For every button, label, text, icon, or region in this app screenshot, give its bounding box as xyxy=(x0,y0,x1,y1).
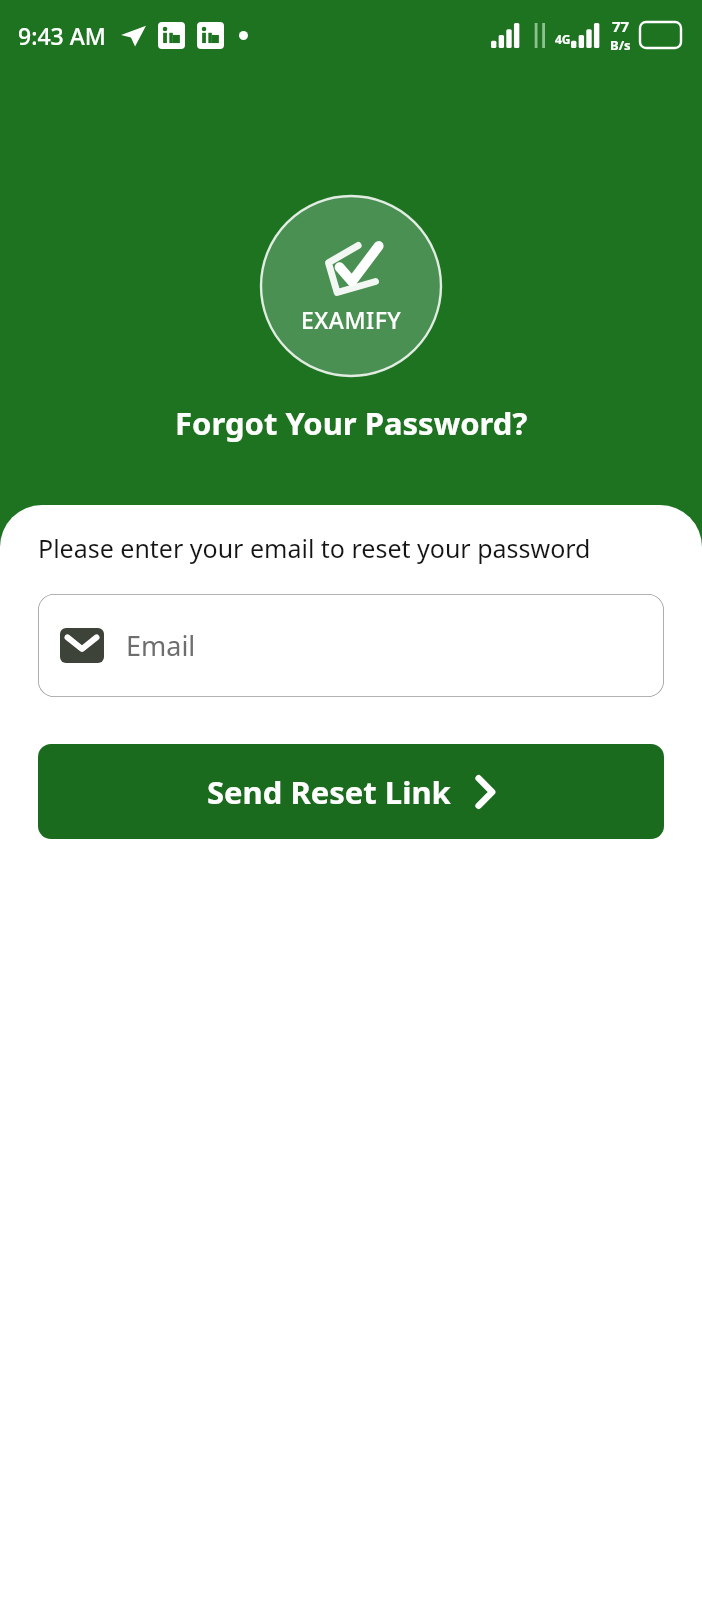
staticText: B/s xyxy=(610,36,631,54)
button[interactable]: Email xyxy=(38,594,664,697)
staticText: 4G xyxy=(555,31,571,47)
staticText: Forgot Your Password? xyxy=(175,402,528,444)
staticText: Please enter your email to reset your pa… xyxy=(38,531,591,565)
staticText: 77 xyxy=(612,16,630,36)
staticText: 9:43 AM xyxy=(18,20,106,51)
staticText: EXAMIFY xyxy=(301,304,402,335)
button[interactable]: Send Reset Link xyxy=(38,744,664,839)
staticText: Send Reset Link xyxy=(207,771,451,813)
staticText: Email xyxy=(126,627,196,664)
other: Email xyxy=(60,628,104,663)
